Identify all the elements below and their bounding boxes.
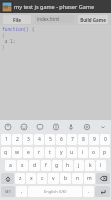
button[interactable]: Settings [82, 122, 92, 132]
button[interactable]: m [84, 173, 95, 184]
button[interactable]: Backspace [96, 173, 110, 184]
button[interactable]: n [72, 173, 83, 184]
button[interactable]: q [1, 147, 11, 158]
staticText: !#1 [5, 189, 11, 194]
staticText: } [2, 44, 5, 50]
staticText: a 1; [2, 38, 16, 44]
button[interactable]: l [96, 160, 106, 171]
button[interactable]: c [37, 173, 47, 184]
button[interactable]: 6 [56, 134, 66, 145]
button[interactable]: e [23, 147, 33, 158]
staticText: { [2, 32, 5, 38]
staticText: Build Game [80, 17, 106, 23]
button[interactable]: Stickers [35, 122, 45, 132]
button[interactable]: x [26, 173, 36, 184]
staticText: y [60, 149, 63, 156]
button[interactable]: 7 [67, 134, 77, 145]
staticText: 3 [27, 136, 30, 143]
staticText: f [45, 162, 47, 169]
button[interactable]: Enter [95, 186, 110, 197]
staticText: b [64, 175, 68, 182]
button[interactable]: k [85, 160, 95, 171]
button[interactable]: Gboard [3, 122, 13, 132]
staticText: g [55, 162, 59, 169]
staticText: 5 [49, 136, 52, 143]
staticText: q [4, 149, 8, 156]
staticText: index.html [37, 16, 60, 22]
staticText: o [92, 149, 96, 156]
button[interactable]: d [29, 160, 40, 171]
staticText: h [66, 162, 70, 169]
staticText: k [89, 162, 92, 169]
staticText: 8 [82, 136, 85, 143]
button[interactable]: More [98, 122, 108, 132]
button[interactable]: !#1 [1, 186, 15, 197]
button[interactable]: 4 [34, 134, 44, 145]
staticText: English (UK) [44, 189, 67, 194]
button[interactable]: s [17, 160, 28, 171]
staticText: 9 [93, 136, 96, 143]
staticText: i [82, 149, 84, 156]
staticText: e [27, 149, 30, 156]
button[interactable]: Shift [1, 173, 14, 184]
button[interactable]: index.html [35, 15, 74, 23]
staticText: File [13, 17, 21, 23]
staticText: my test js game - phaser Game [14, 3, 94, 10]
staticText: z [19, 175, 22, 182]
button[interactable]: Voice input [66, 122, 76, 132]
button[interactable]: 8 [78, 134, 88, 145]
staticText: r [38, 149, 41, 156]
button[interactable]: 9 [89, 134, 99, 145]
staticText: j [78, 162, 80, 169]
button[interactable]: y [56, 147, 66, 158]
button[interactable]: Emoji [19, 122, 29, 132]
button[interactable]: r [34, 147, 44, 158]
staticText: l [100, 162, 102, 169]
staticText: s [21, 162, 24, 169]
staticText: u [70, 149, 74, 156]
button[interactable]: 2 [12, 134, 22, 145]
button[interactable]: Clipboard [51, 122, 61, 132]
staticText: v [52, 175, 55, 182]
staticText: t [49, 149, 51, 156]
button[interactable]: j [74, 160, 84, 171]
button[interactable]: h [63, 160, 73, 171]
button[interactable]: v [48, 173, 59, 184]
button[interactable]: 5 [45, 134, 55, 145]
button[interactable]: f [41, 160, 51, 171]
staticText: 0 [104, 136, 107, 143]
button[interactable]: Build Game [78, 15, 108, 24]
button[interactable]: 0 [100, 134, 110, 145]
staticText: , [21, 188, 23, 195]
staticText: d [33, 162, 37, 169]
button[interactable]: p [100, 147, 110, 158]
staticText: x [30, 175, 33, 182]
button[interactable]: g [52, 160, 62, 171]
staticText: 2 [16, 136, 19, 143]
button[interactable]: a [5, 160, 16, 171]
button[interactable]: u [67, 147, 77, 158]
staticText: n [76, 175, 80, 182]
staticText: 7 [71, 136, 74, 143]
staticText: p [103, 149, 107, 156]
button[interactable]: 3 [23, 134, 33, 145]
button[interactable]: t [45, 147, 55, 158]
staticText: a [9, 162, 12, 169]
button[interactable]: b [60, 173, 71, 184]
staticText: c [41, 175, 44, 182]
staticText: w [15, 149, 19, 156]
button[interactable]: z [15, 173, 25, 184]
staticText: function() { [2, 26, 35, 32]
button[interactable]: , [16, 186, 27, 197]
staticText: m [87, 175, 92, 182]
button[interactable]: English (UK) [28, 186, 82, 197]
button[interactable]: o [89, 147, 99, 158]
button[interactable]: . [83, 186, 94, 197]
staticText: 4 [38, 136, 41, 143]
button[interactable]: 1 [1, 134, 11, 145]
button[interactable]: w [12, 147, 22, 158]
button[interactable]: File [3, 15, 31, 24]
staticText: 6 [60, 136, 63, 143]
staticText: 1 [5, 136, 8, 143]
button[interactable]: i [78, 147, 88, 158]
